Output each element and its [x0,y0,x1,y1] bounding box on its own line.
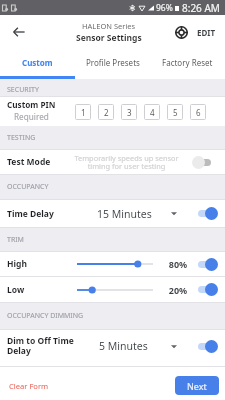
button[interactable]: Custom PIN [0,97,225,126]
staticText: Custom [22,57,53,68]
staticText: OCCUPANCY DIMMING [7,311,84,321]
button[interactable]: Toggle on [195,283,218,296]
button[interactable]: Dim to Off Time Delay [0,330,225,366]
staticText: 3 [127,107,132,118]
button[interactable]: Toggle on [195,258,218,271]
button[interactable]: Toggle off [192,156,215,169]
staticText: Sensor Settings [76,32,142,44]
staticText: 80% [168,258,188,270]
staticText: Low [7,284,25,296]
button[interactable]: High [0,252,225,276]
button[interactable]: Factory Reset [150,49,225,76]
staticText: 1 [81,107,86,118]
staticText: 20% [168,284,188,296]
button[interactable]: EDIT [193,21,225,44]
staticText: OCCUPANCY [7,182,49,192]
button[interactable]: 5 [167,104,183,120]
button[interactable]: Next [175,376,219,395]
staticText: 5 Minutes [99,339,148,353]
button[interactable]: Back [8,21,30,43]
staticText: Dim to Off Time Delay [7,335,74,356]
staticText: Temporarily speeds up sensor timing for … [74,153,179,171]
button[interactable]: Clear Form [3,376,55,396]
button[interactable]: Test Mode [0,150,225,174]
staticText: HALEON Series [82,21,136,31]
staticText: 6 [196,107,201,118]
staticText: Profile Presets [86,57,140,68]
button[interactable]: 1 [75,104,91,120]
staticText: Required [14,111,49,122]
staticText: Time Delay [7,208,54,220]
button[interactable]: Support [169,20,193,44]
staticText: EDIT [197,27,216,38]
staticText: Clear Form [9,381,49,391]
staticText: Next [187,380,207,392]
staticText: TRIM [7,235,24,245]
button[interactable]: 2 [98,104,114,120]
button[interactable]: 3 [121,104,137,120]
staticText: 96% [156,2,173,14]
button[interactable]: Toggle on [195,340,218,353]
staticText: Test Mode [7,156,51,168]
staticText: Custom PIN [7,99,56,110]
button[interactable]: Time Delay [0,200,225,227]
staticText: Factory Reset [162,57,213,68]
staticText: 15 Minutes [97,207,152,221]
staticText: SECURITY [7,85,39,95]
staticText: High [7,258,27,270]
staticText: 4 [150,107,155,118]
staticText: 5 [173,107,178,118]
staticText: TESTING [7,133,36,143]
button[interactable]: 6 [190,104,206,120]
staticText: 8:26 AM [182,1,220,15]
button[interactable]: Profile Presets [75,49,150,76]
button[interactable]: 4 [144,104,160,120]
button[interactable]: Toggle on [195,207,218,220]
button[interactable]: Custom [0,49,75,76]
staticText: 2 [104,107,109,118]
button[interactable]: Low [0,277,225,302]
